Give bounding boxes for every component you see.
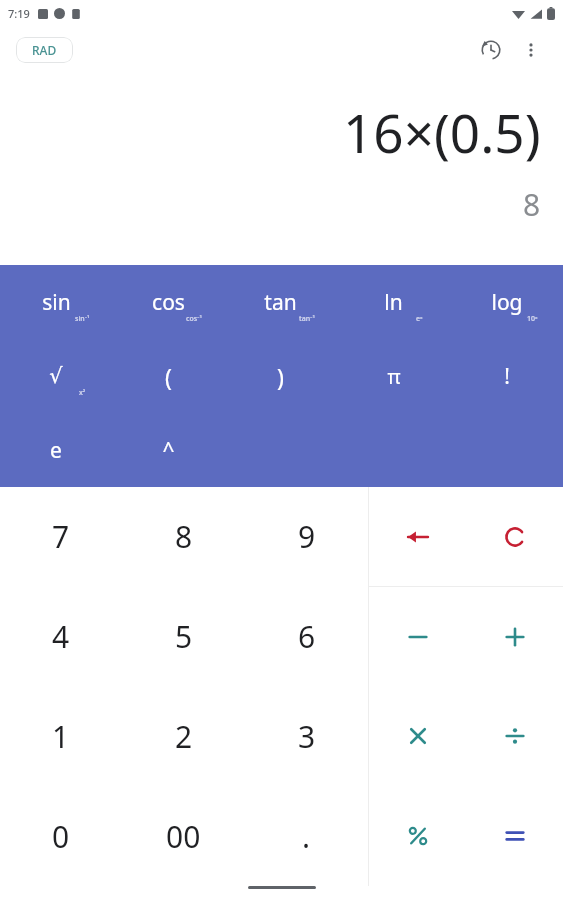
button[interactable]: Backspace — [369, 487, 466, 586]
button[interactable]: cos — [112, 265, 224, 339]
button[interactable]: ^ — [112, 413, 224, 487]
button[interactable]: More options — [511, 30, 551, 70]
staticText: sin⁻¹ — [75, 314, 90, 324]
button[interactable]: log — [450, 265, 563, 339]
staticText: cos — [152, 288, 185, 317]
button[interactable]: Divide — [466, 686, 563, 786]
button[interactable]: ( — [112, 339, 224, 413]
staticText: 7 — [52, 516, 70, 557]
button[interactable]: 7 — [0, 487, 122, 586]
staticText: √ — [49, 364, 63, 388]
button[interactable]: 8 — [122, 487, 245, 586]
staticText: x² — [79, 388, 86, 398]
button[interactable]: 3 — [245, 686, 368, 786]
staticText: π — [387, 363, 401, 390]
button[interactable]: e — [0, 413, 112, 487]
button[interactable]: ln — [337, 265, 450, 339]
button[interactable]: 5 — [122, 586, 245, 686]
button[interactable]: tan — [224, 265, 337, 339]
staticText: 7:19 — [8, 6, 30, 21]
staticText: log — [491, 288, 523, 317]
staticText: 00 — [166, 816, 201, 857]
staticText: 2 — [175, 716, 193, 757]
staticText: 16×(0.5) — [343, 96, 541, 168]
button[interactable]: . — [245, 786, 368, 886]
button[interactable]: Plus — [466, 587, 563, 686]
staticText: 9 — [298, 516, 316, 557]
staticText: 8 — [523, 184, 541, 225]
staticText: 0 — [52, 816, 70, 857]
staticText: ln — [384, 288, 403, 317]
staticText: sin — [42, 288, 71, 317]
staticText: tan⁻¹ — [299, 314, 315, 324]
staticText: 1 — [52, 716, 70, 757]
button[interactable]: π — [337, 339, 450, 413]
staticText: ^ — [162, 436, 175, 465]
button[interactable]: 9 — [245, 487, 368, 586]
button[interactable]: Percent — [369, 786, 466, 886]
button[interactable]: ! — [450, 339, 563, 413]
button[interactable]: Clear — [466, 487, 563, 586]
button[interactable]: 1 — [0, 686, 122, 786]
staticText: 4 — [52, 616, 70, 657]
button[interactable]: RAD — [16, 37, 73, 63]
button[interactable]: History — [471, 30, 511, 70]
button[interactable]: Minus — [369, 587, 466, 686]
button[interactable]: 2 — [122, 686, 245, 786]
staticText: tan — [264, 288, 297, 317]
button[interactable]: 00 — [122, 786, 245, 886]
staticText: e — [50, 436, 62, 465]
button[interactable]: sin — [0, 265, 112, 339]
staticText: ) — [277, 361, 284, 392]
staticText: 8 — [175, 516, 193, 557]
button[interactable]: Multiply — [369, 686, 466, 786]
staticText: eˣ — [416, 314, 423, 324]
button[interactable]: 4 — [0, 586, 122, 686]
staticText: . — [302, 816, 311, 857]
staticText: 6 — [298, 616, 316, 657]
staticText: 3 — [298, 716, 316, 757]
button[interactable]: 6 — [245, 586, 368, 686]
staticText: ! — [504, 362, 510, 391]
button[interactable]: √ — [0, 339, 112, 413]
staticText: 10ˣ — [527, 314, 538, 324]
staticText: cos⁻¹ — [186, 314, 203, 324]
button[interactable]: Equals — [466, 786, 563, 886]
button[interactable]: ) — [224, 339, 337, 413]
staticText: ( — [165, 361, 172, 392]
button[interactable]: 0 — [0, 786, 122, 886]
staticText: 5 — [175, 616, 193, 657]
staticText: RAD — [32, 42, 57, 58]
